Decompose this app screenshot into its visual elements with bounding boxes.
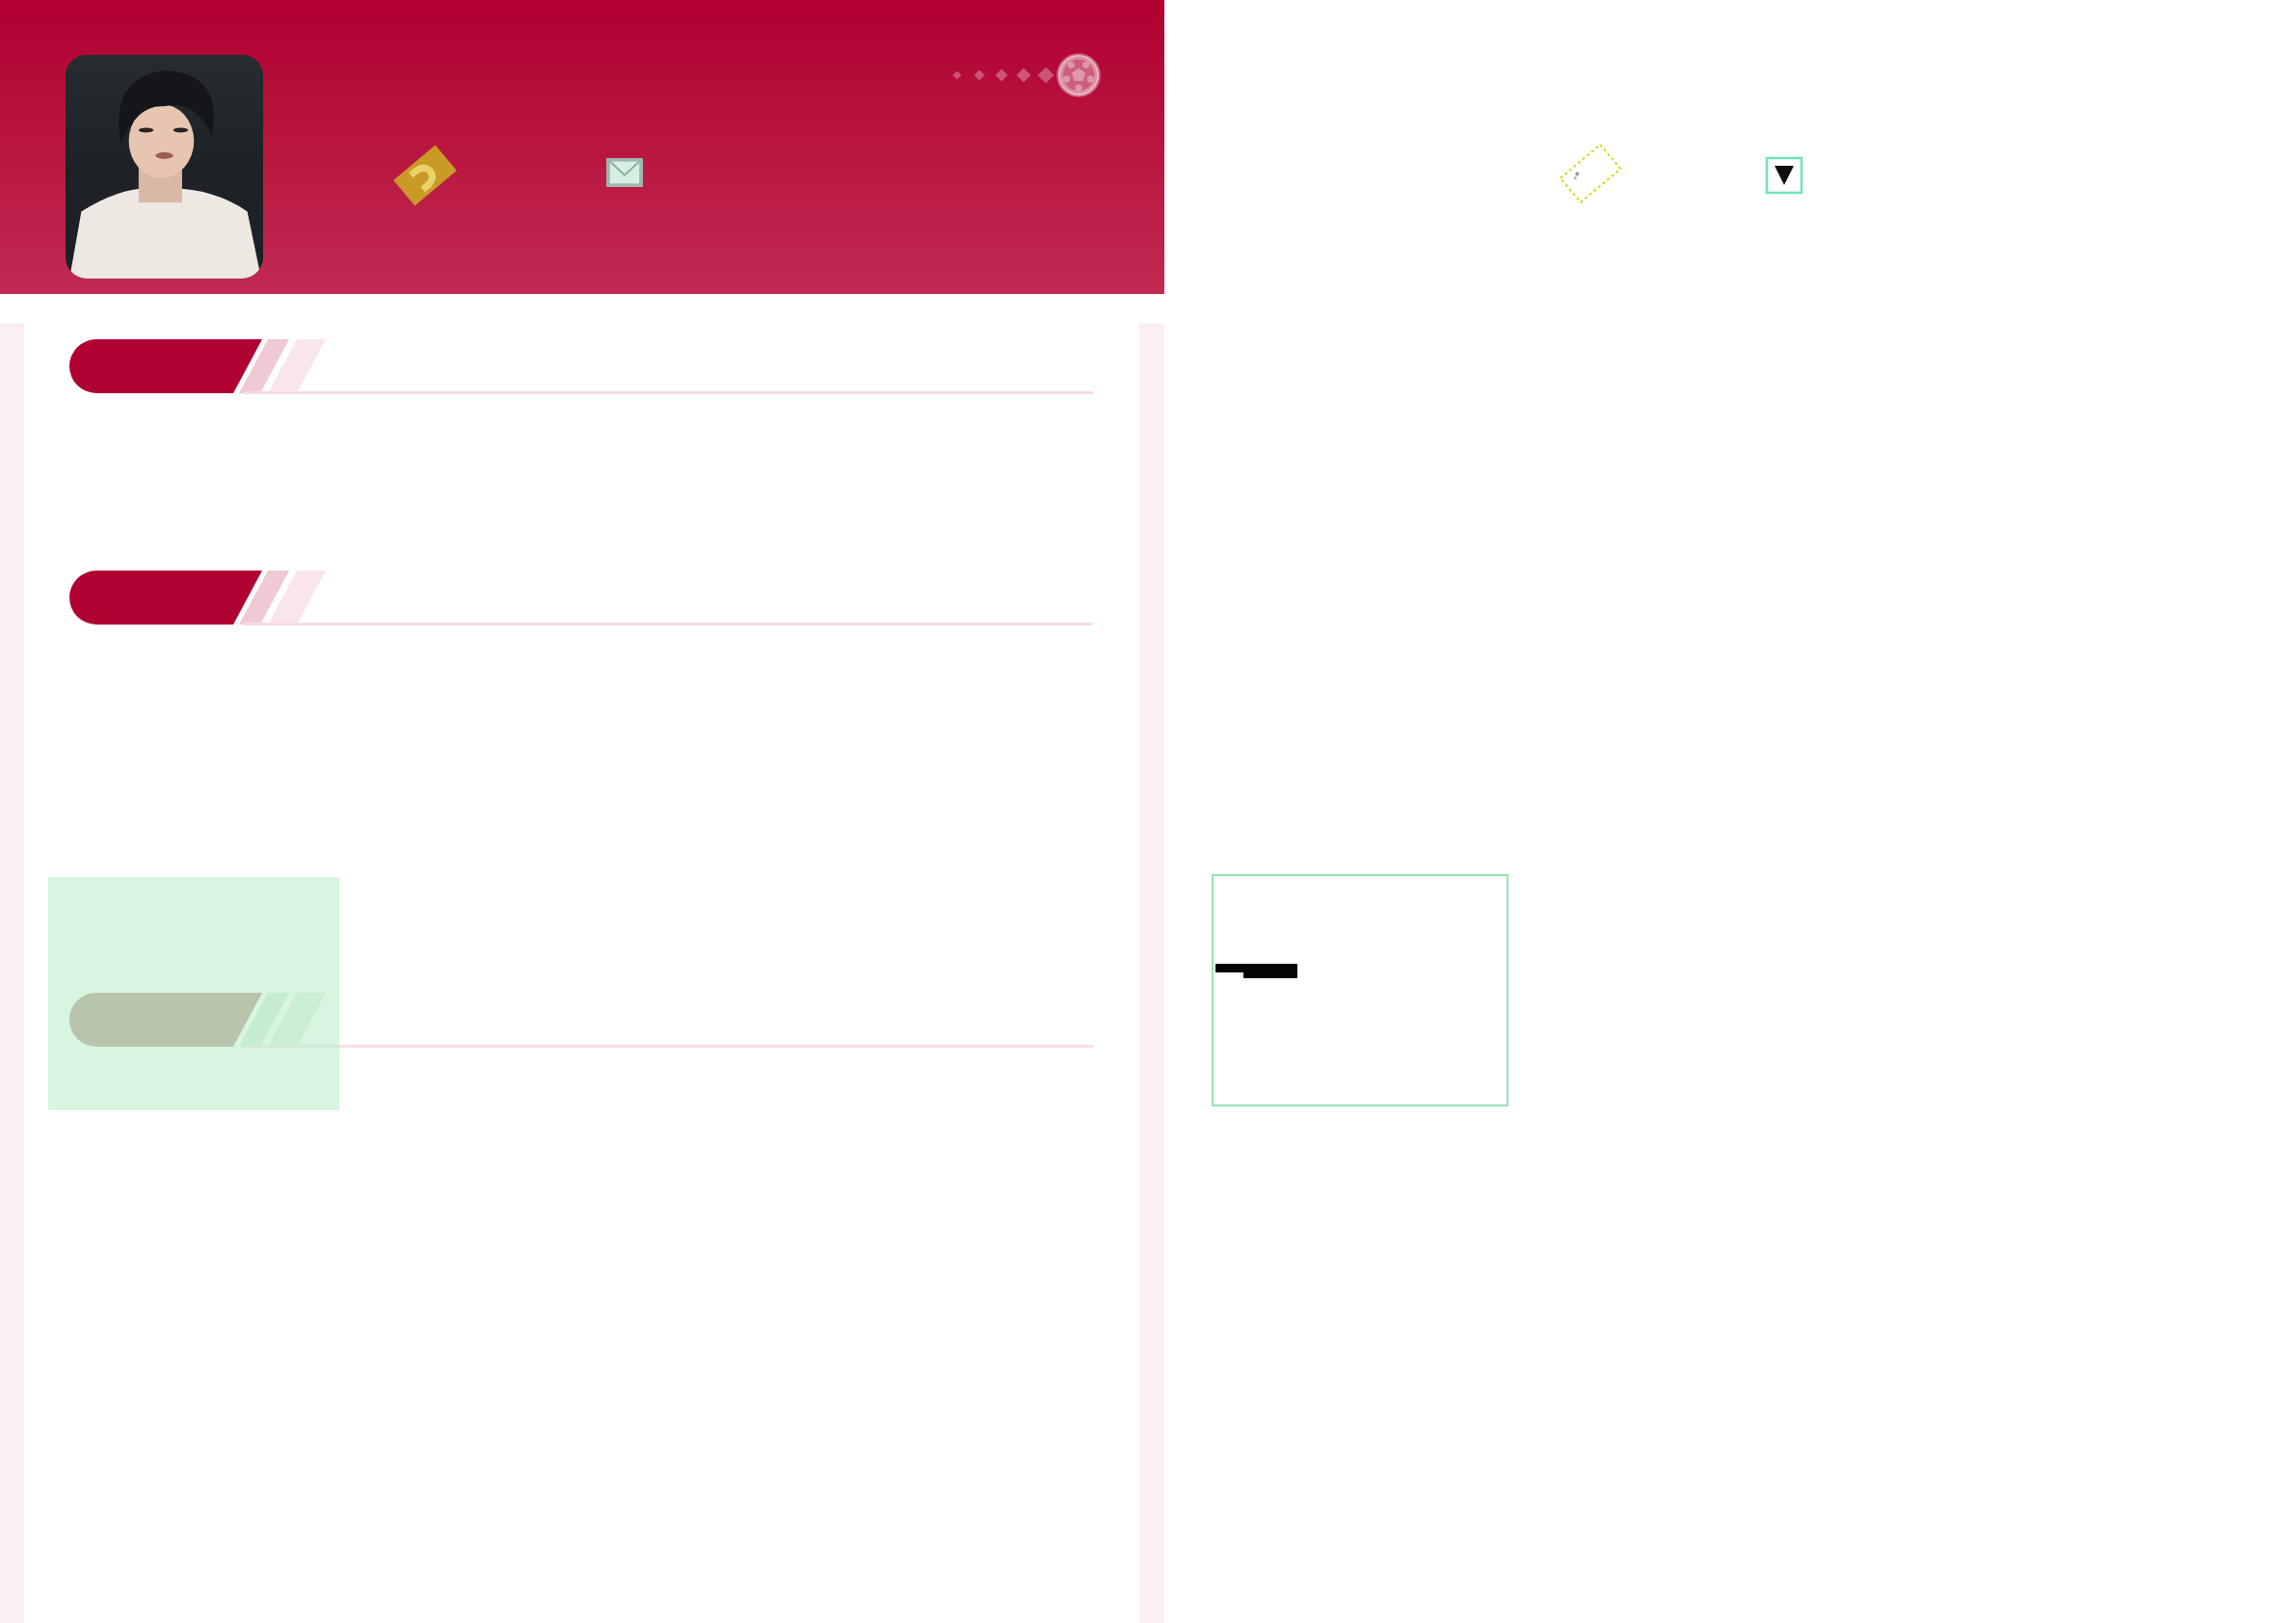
button[interactable]: Profile header bbox=[0, 0, 2296, 1623]
